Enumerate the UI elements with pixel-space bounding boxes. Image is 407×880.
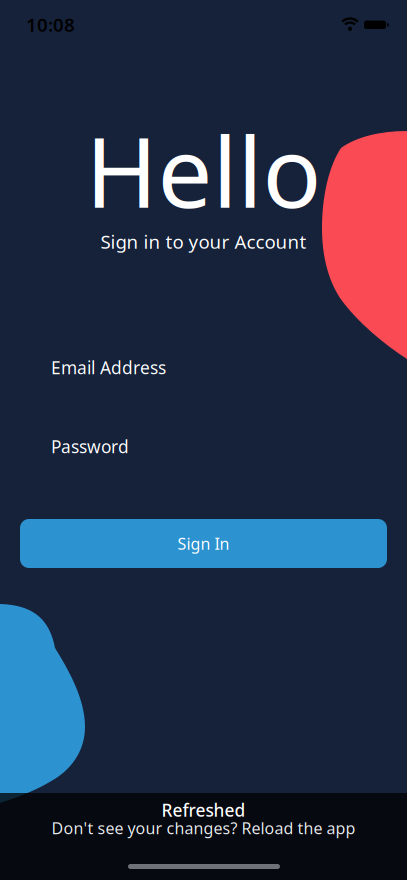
staticText: Sign in to your Account — [100, 229, 306, 254]
staticText: Refreshed — [161, 798, 245, 821]
staticText: Email Address — [51, 356, 166, 379]
staticText: Sign In — [177, 533, 229, 554]
staticText: Don't see your changes? Reload the app — [51, 817, 355, 839]
staticText: Password — [51, 435, 129, 458]
button[interactable]: Password — [0, 424, 407, 468]
button[interactable]: Sign In — [20, 519, 387, 568]
staticText: Hello — [85, 105, 321, 235]
button[interactable]: Email Address — [0, 345, 407, 389]
staticText: 10:08 — [26, 12, 75, 37]
